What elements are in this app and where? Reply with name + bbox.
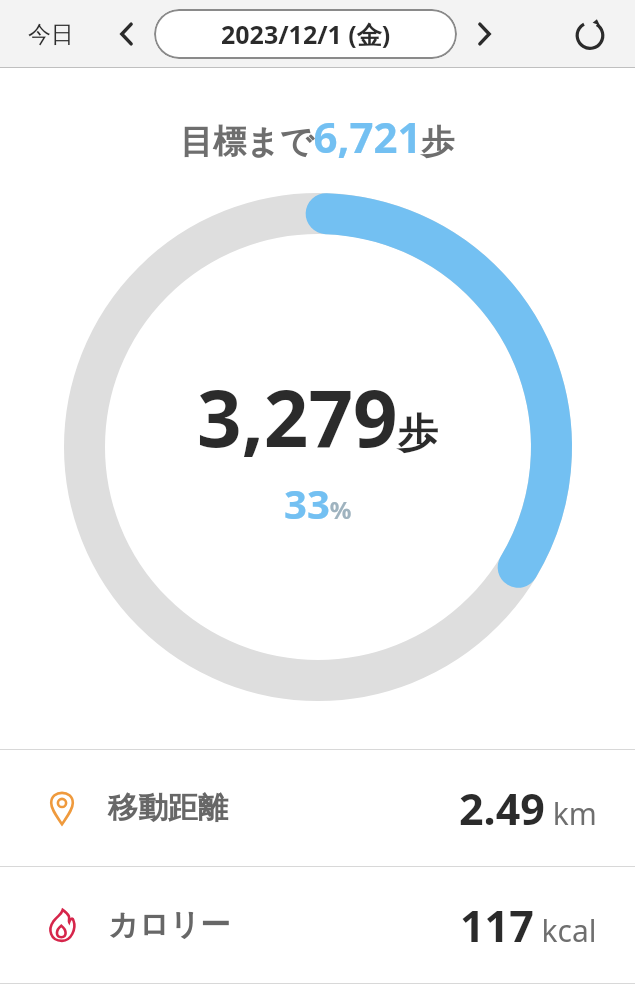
button[interactable]: Calories <box>0 867 635 983</box>
staticText: 3,279歩 <box>197 364 438 470</box>
staticText: 今日 <box>28 20 74 49</box>
button[interactable]: Distance <box>0 750 635 866</box>
other: Distance <box>42 788 82 828</box>
other: Calories <box>42 905 82 945</box>
staticText: 2.49 km <box>459 779 597 838</box>
staticText: 2023/12/1 (金) <box>221 17 391 51</box>
staticText: カロリー <box>108 906 231 944</box>
button[interactable]: 今日 <box>22 14 80 55</box>
staticText: 移動距離 <box>108 789 228 827</box>
button[interactable]: Next day <box>463 13 505 55</box>
staticText: 117 kcal <box>460 896 597 955</box>
staticText: 33% <box>284 476 352 530</box>
button[interactable]: Previous day <box>106 13 148 55</box>
button[interactable]: 2023/12/1 (金) <box>154 9 457 59</box>
staticText: 目標まで6,721歩 <box>180 108 455 165</box>
button[interactable]: Refresh <box>567 11 613 57</box>
